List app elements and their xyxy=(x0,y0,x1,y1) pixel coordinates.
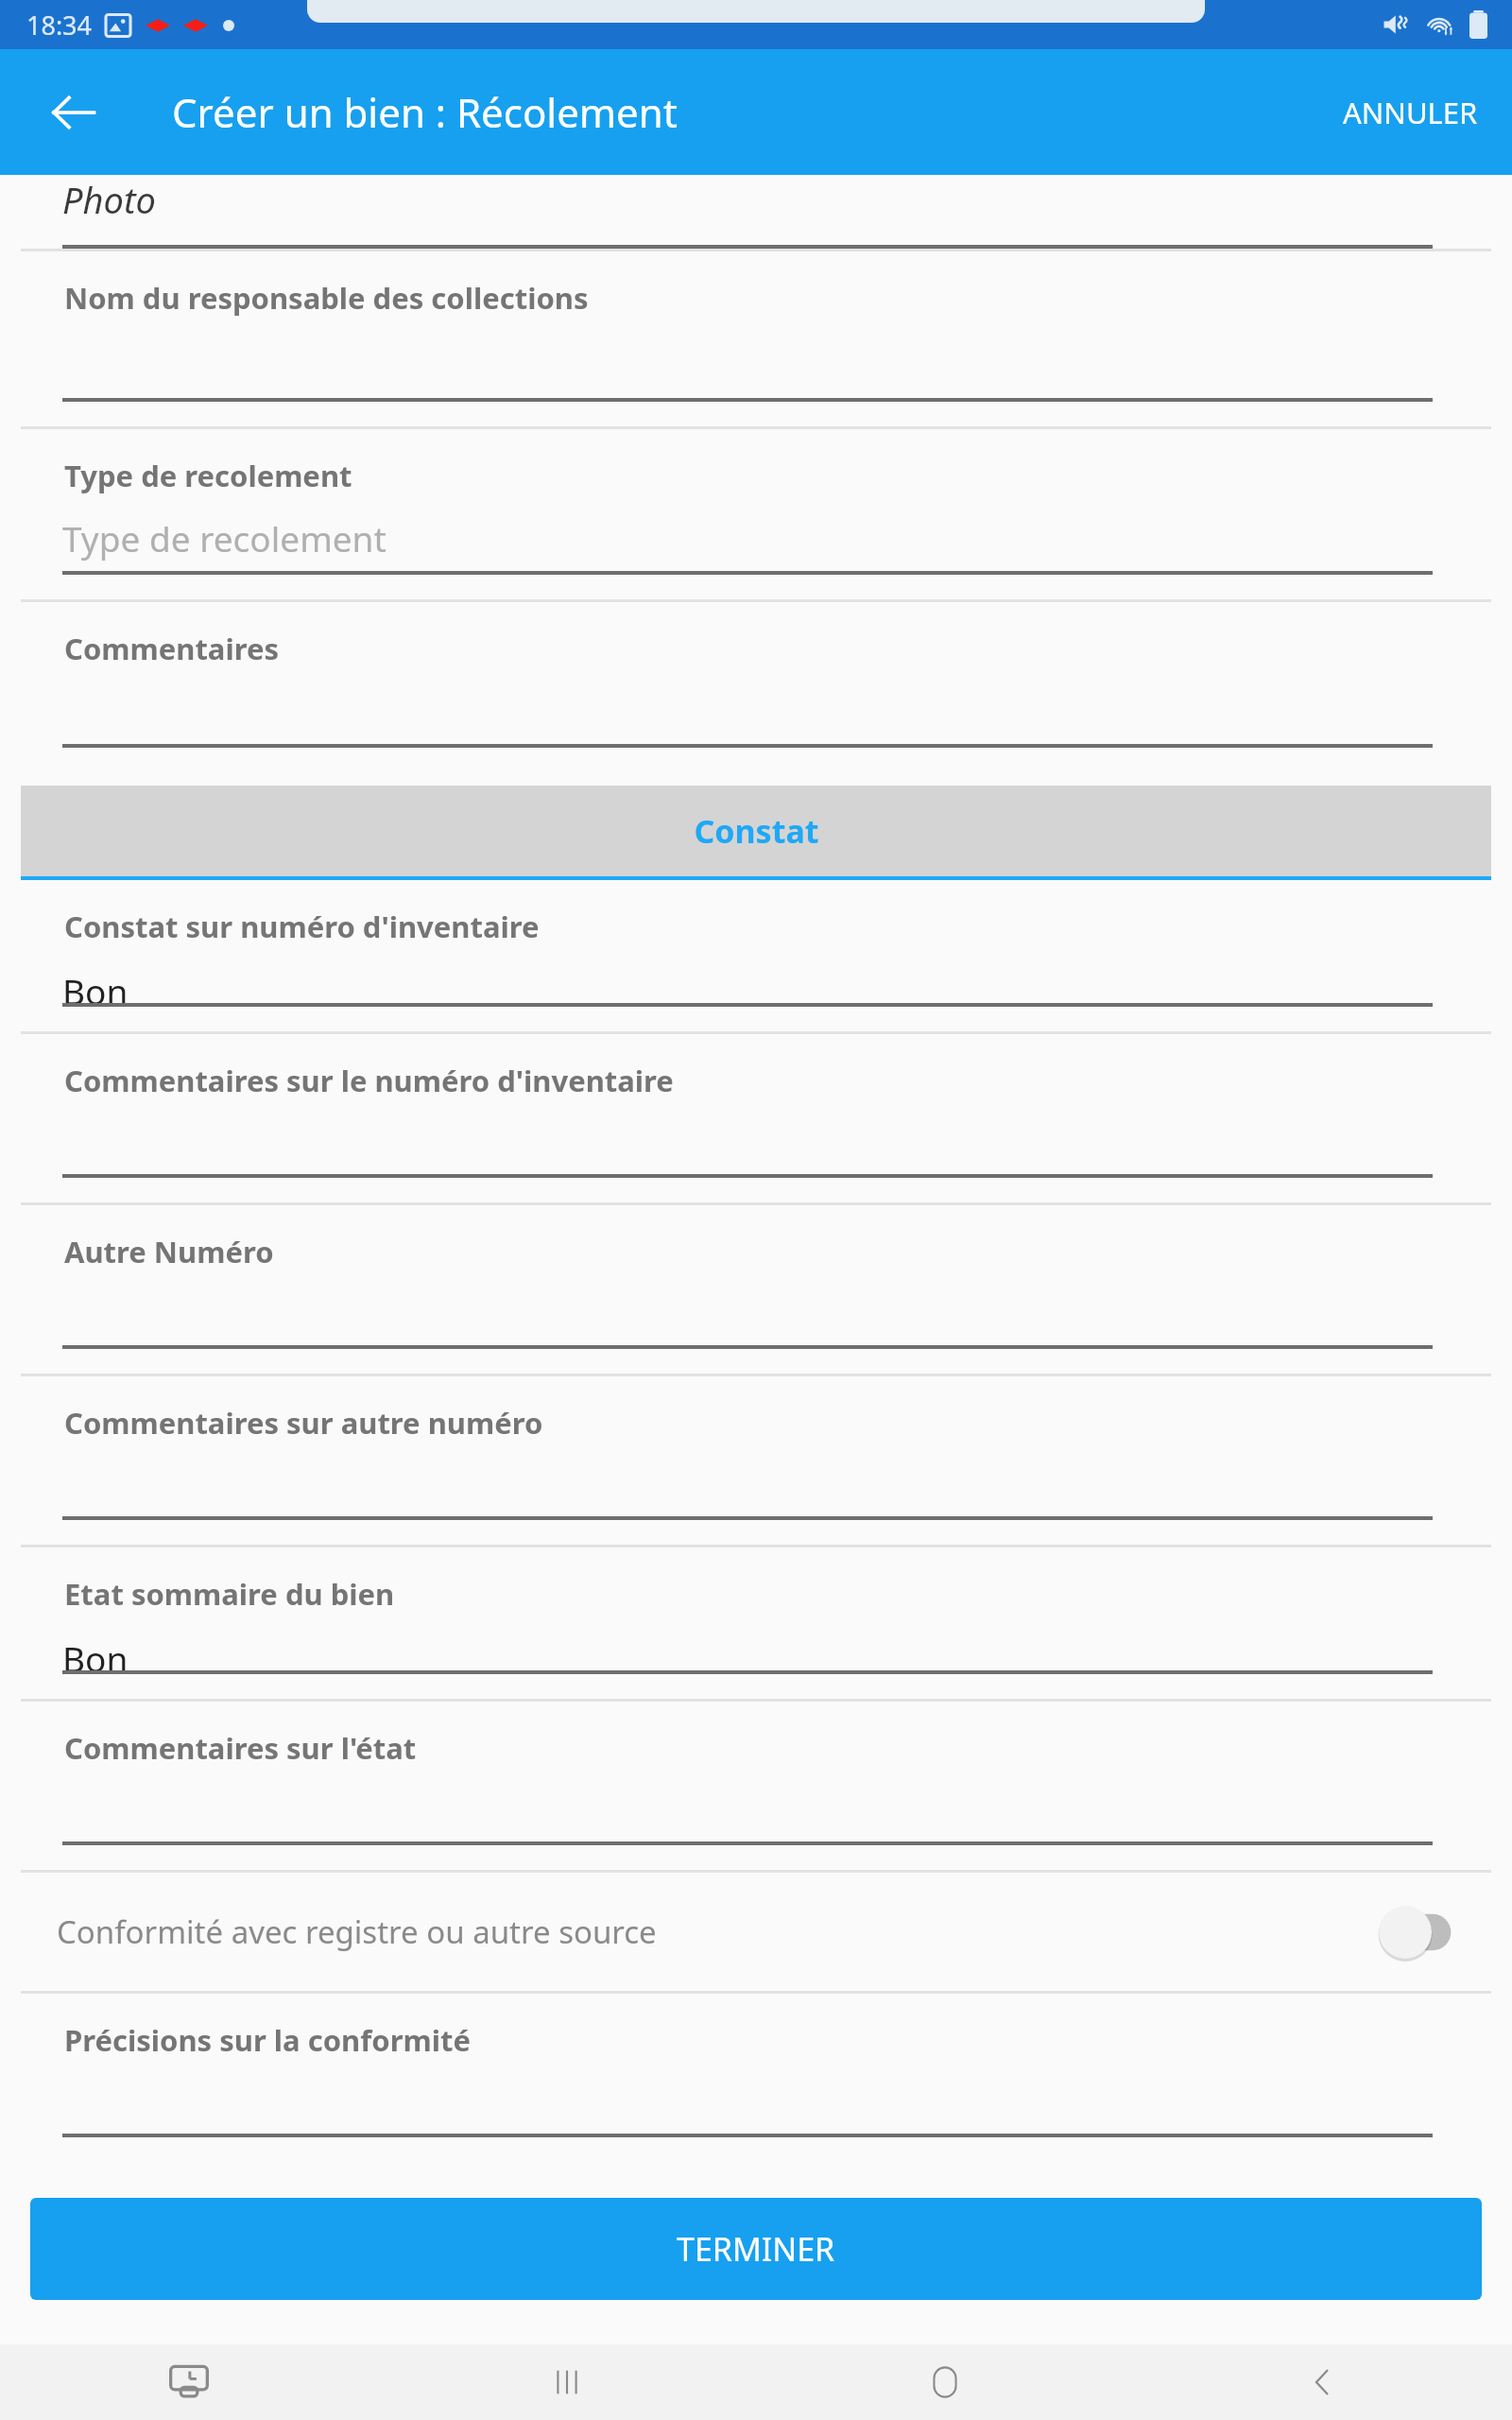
staticText: TERMINER xyxy=(677,2227,835,2271)
staticText: Créer un bien : Récolement xyxy=(172,85,678,139)
staticText: ANNULER xyxy=(1343,93,1478,132)
button[interactable]: Commentaires sur autre numéro xyxy=(0,1376,1512,1545)
button[interactable]: Back xyxy=(34,73,113,152)
staticText: Commentaires sur l'état xyxy=(64,1728,417,1768)
button[interactable]: Recent apps xyxy=(378,2344,756,2420)
button[interactable]: Commentaires sur l'état xyxy=(0,1702,1512,1870)
staticText: Bon xyxy=(62,967,129,1014)
staticText: Etat sommaire du bien xyxy=(64,1574,395,1614)
button[interactable]: Hide keyboard xyxy=(0,2344,378,2420)
staticText: 18:34 xyxy=(26,8,93,43)
button[interactable]: Conformité avec registre ou autre source xyxy=(0,1873,1512,1991)
staticText: Conformité avec registre ou autre source xyxy=(57,1910,657,1953)
button[interactable]: Type de recolement xyxy=(0,429,1512,599)
button[interactable]: Home xyxy=(756,2344,1134,2420)
button[interactable]: Constat sur numéro d'inventaire xyxy=(0,880,1512,1031)
button[interactable]: ANNULER xyxy=(1309,68,1512,157)
staticText: Type de recolement xyxy=(64,456,352,495)
staticText: Autre Numéro xyxy=(64,1232,274,1271)
button[interactable]: Constat xyxy=(21,786,1491,876)
button[interactable]: Etat sommaire du bien xyxy=(0,1547,1512,1699)
staticText: Constat sur numéro d'inventaire xyxy=(64,907,540,946)
staticText: Photo xyxy=(62,175,156,224)
button[interactable]: Commentaires sur le numéro d'inventaire xyxy=(0,1034,1512,1202)
button[interactable]: Back xyxy=(1134,2344,1512,2420)
staticText: Commentaires sur autre numéro xyxy=(64,1403,543,1443)
button[interactable]: Autre Numéro xyxy=(0,1205,1512,1374)
staticText: Précisions sur la conformité xyxy=(64,2020,471,2060)
button[interactable]: Nom du responsable des collections xyxy=(0,251,1512,426)
button[interactable]: TERMINER xyxy=(30,2198,1482,2300)
staticText: Commentaires xyxy=(64,629,279,668)
button[interactable]: Commentaires xyxy=(0,602,1512,772)
staticText: Constat xyxy=(694,809,819,853)
staticText: Nom du responsable des collections xyxy=(64,278,589,318)
staticText: Bon xyxy=(62,1634,129,1682)
staticText: Commentaires sur le numéro d'inventaire xyxy=(64,1061,674,1100)
button[interactable]: Précisions sur la conformité xyxy=(0,1994,1512,2162)
staticText: Type de recolement xyxy=(62,514,387,562)
